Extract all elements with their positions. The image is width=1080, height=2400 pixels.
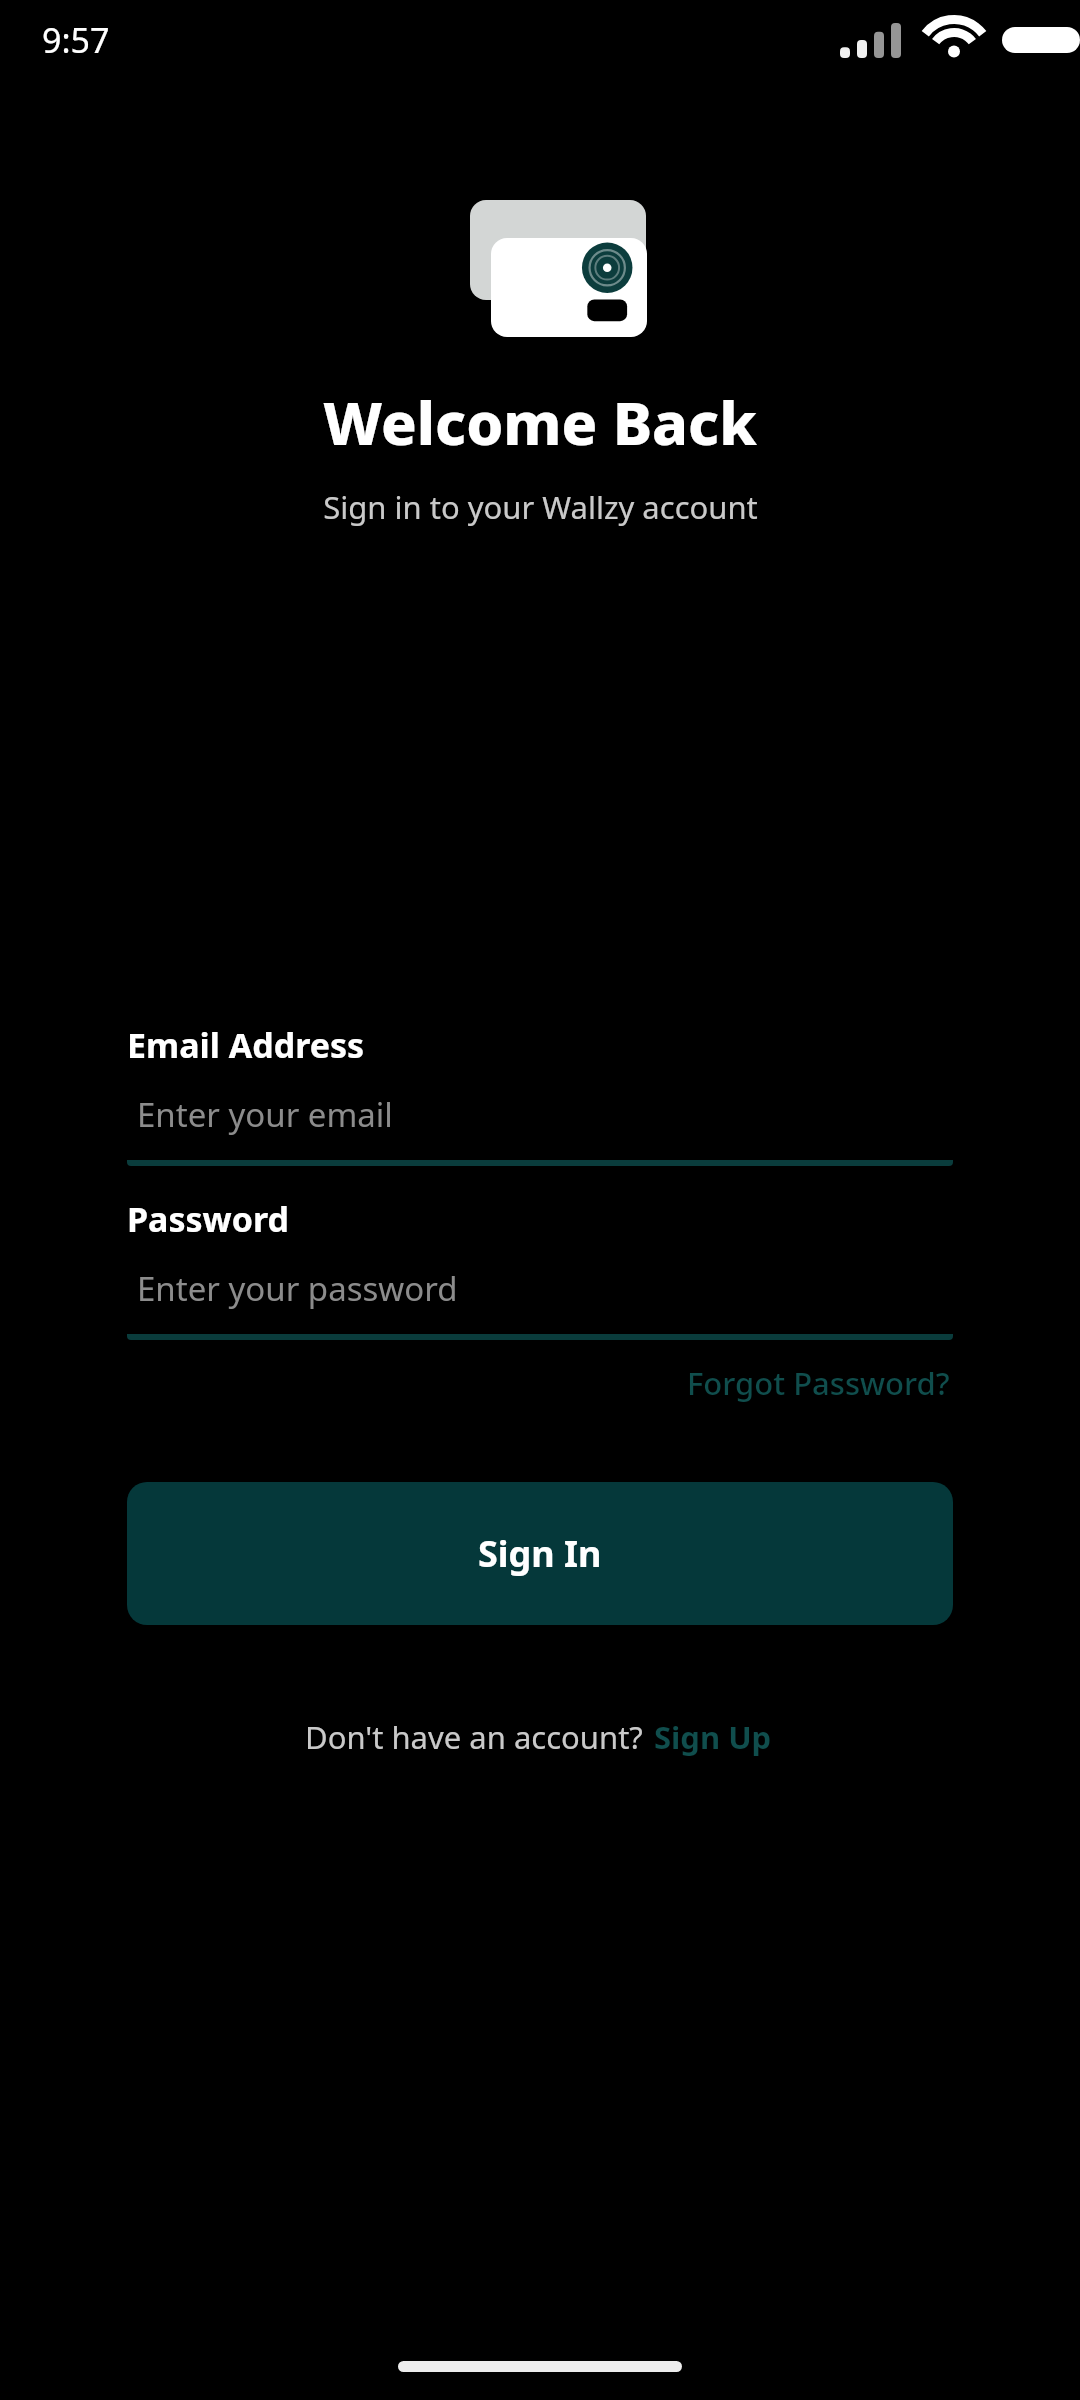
staticText: Email Address xyxy=(127,1022,365,1068)
button[interactable]: Enter your password xyxy=(127,1242,953,1340)
staticText: Password xyxy=(127,1196,289,1242)
staticText: Forgot Password? xyxy=(687,1362,950,1404)
staticText: Don't have an account? xyxy=(305,1716,651,1758)
staticText: Enter your password xyxy=(137,1266,458,1311)
button[interactable]: Sign Up xyxy=(651,1711,775,1763)
staticText: Sign In xyxy=(478,1529,602,1578)
button[interactable]: Sign In xyxy=(127,1482,953,1625)
button[interactable]: Forgot Password? xyxy=(684,1354,953,1412)
staticText: Sign Up xyxy=(654,1716,772,1758)
button[interactable]: Enter your email xyxy=(127,1068,953,1166)
staticText: Welcome Back xyxy=(323,382,757,462)
other: Signal, Wi-Fi and battery status xyxy=(840,22,1040,58)
staticText: Sign in to your Wallzy account xyxy=(323,486,758,528)
staticText: Enter your email xyxy=(137,1092,393,1137)
staticText: 9:57 xyxy=(42,17,110,63)
